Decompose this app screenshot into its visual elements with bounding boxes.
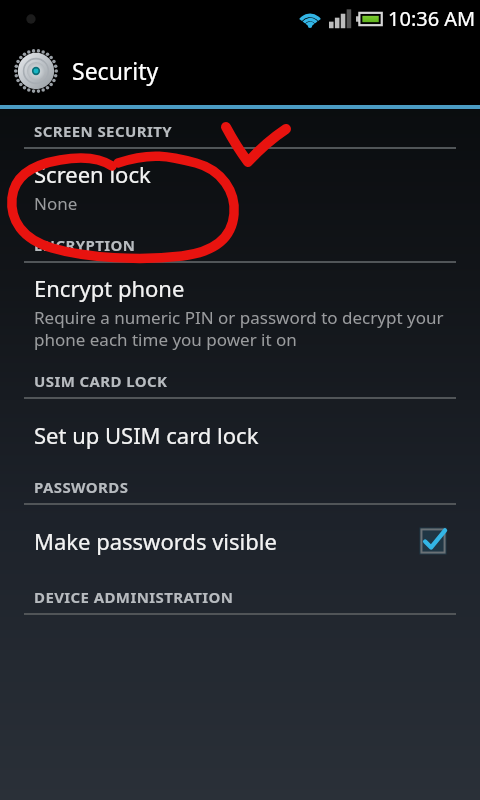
staticText: SCREEN SECURITY [34,121,172,141]
staticText: Screen lock [34,159,151,189]
staticText: ENCRYPTION [34,235,136,255]
other: Make passwords visible checkbox [416,524,450,558]
staticText: Encrypt phone [34,273,185,303]
button[interactable]: Security [0,36,480,105]
staticText: 10:36 AM [388,5,476,32]
staticText: DEVICE ADMINISTRATION [34,587,234,607]
staticText: USIM CARD LOCK [34,371,168,391]
staticText: PASSWORDS [34,477,129,497]
button[interactable]: Set up USIM card lock [0,399,480,471]
staticText: Make passwords visible [34,526,416,556]
button[interactable]: Make passwords visible [0,505,480,577]
staticText: Set up USIM card lock [34,420,259,450]
staticText: None [34,192,78,215]
staticText: Require a numeric PIN or password to dec… [34,306,456,351]
staticText: Security [72,55,159,86]
button[interactable]: Screen lock [0,149,480,227]
button[interactable]: Encrypt phone [0,263,480,363]
